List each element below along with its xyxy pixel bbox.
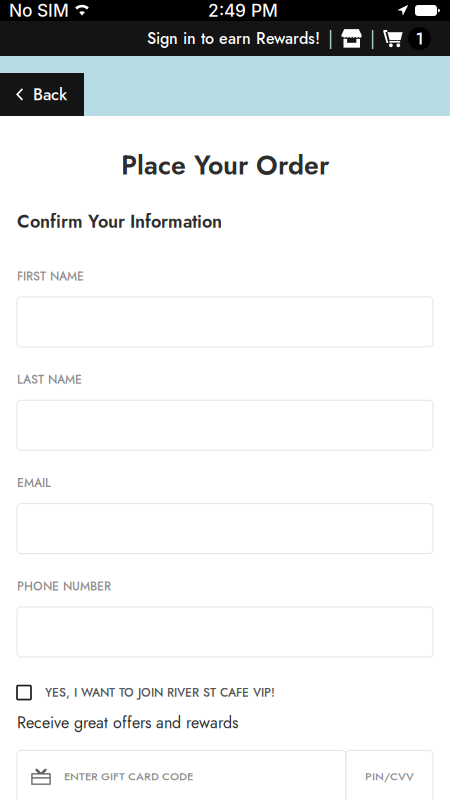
staticText: YES, I WANT TO JOIN RIVER ST CAFE VIP! (45, 684, 275, 701)
button[interactable]: PIN/CVV (346, 750, 433, 800)
staticText: 1 (415, 26, 423, 51)
staticText: | (328, 25, 333, 52)
button[interactable]: YES, I WANT TO JOIN RIVER ST CAFE VIP! (17, 657, 433, 701)
staticText: FIRST NAME (17, 267, 84, 285)
staticText: LAST NAME (17, 371, 82, 388)
button[interactable]: Store (341, 28, 362, 48)
staticText: 2:49 PM (208, 0, 278, 21)
staticText: No SIM (9, 0, 69, 21)
button[interactable]: ENTER GIFT CARD CODE (17, 750, 346, 800)
staticText: Confirm Your Information (17, 208, 222, 234)
staticText: EMAIL (17, 474, 51, 491)
staticText: Receive great offers and rewards (17, 711, 238, 734)
button[interactable]: Sign in to earn Rewards! (147, 27, 320, 50)
button[interactable]: Cart, 1 item (383, 27, 431, 50)
staticText: Place Your Order (121, 146, 329, 184)
button[interactable]: Back (0, 73, 84, 116)
staticText: | (370, 25, 375, 52)
staticText: Back (33, 82, 67, 107)
staticText: Sign in to earn Rewards! (147, 27, 320, 50)
staticText: PHONE NUMBER (17, 578, 111, 595)
staticText: ENTER GIFT CARD CODE (64, 768, 193, 785)
staticText: PIN/CVV (365, 768, 414, 785)
